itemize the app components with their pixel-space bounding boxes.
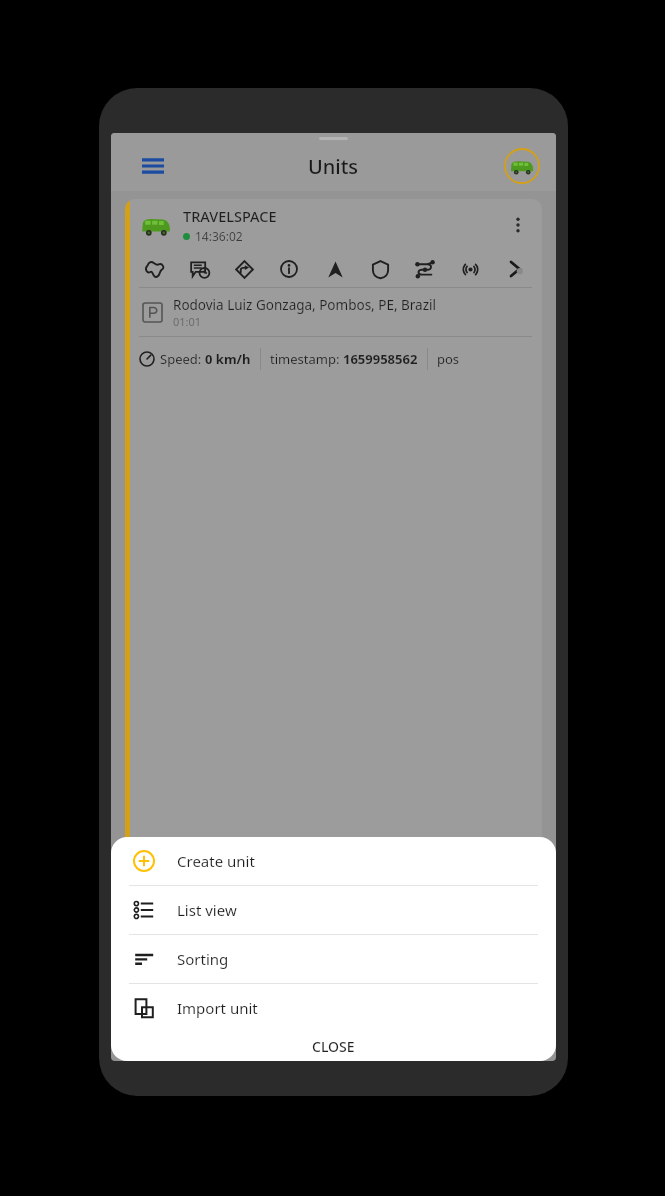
staticText: 0 km/h — [205, 350, 251, 368]
button[interactable]: More — [500, 254, 530, 284]
button[interactable]: Report — [184, 254, 214, 284]
button[interactable]: Import unit — [111, 984, 556, 1032]
button[interactable]: Track — [139, 254, 169, 284]
button[interactable]: Menu — [133, 146, 173, 186]
staticText: CLOSE — [312, 1037, 355, 1056]
button[interactable]: Account — [502, 146, 542, 186]
button[interactable]: Path — [410, 254, 440, 284]
staticText: 1659958562 — [343, 350, 418, 368]
button[interactable]: Sorting — [111, 935, 556, 983]
staticText: Create unit — [177, 851, 255, 871]
staticText: 14:36:02 — [195, 228, 243, 244]
button[interactable]: List view — [111, 886, 556, 934]
button[interactable]: Nav — [320, 254, 350, 284]
staticText: 01:01 — [173, 314, 202, 329]
button[interactable]: TRAVELSPACE — [125, 199, 542, 1061]
staticText: Rodovia Luiz Gonzaga, Pombos, PE, Brazil — [173, 296, 436, 314]
button[interactable]: Signal — [455, 254, 485, 284]
staticText: Sorting — [177, 949, 229, 969]
staticText: pos — [437, 350, 460, 368]
button[interactable]: Create unit — [111, 837, 556, 885]
staticText: List view — [177, 900, 237, 920]
staticText: Speed: — [160, 350, 205, 368]
button[interactable]: More options — [500, 207, 536, 243]
staticText: TRAVELSPACE — [183, 206, 277, 226]
staticText: Import unit — [177, 998, 258, 1018]
button[interactable]: CLOSE — [111, 1032, 556, 1061]
button[interactable]: Shield — [365, 254, 395, 284]
button[interactable]: Info — [274, 254, 304, 284]
staticText: timestamp: — [270, 350, 343, 368]
staticText: Units — [308, 153, 359, 180]
button[interactable]: Route — [229, 254, 259, 284]
